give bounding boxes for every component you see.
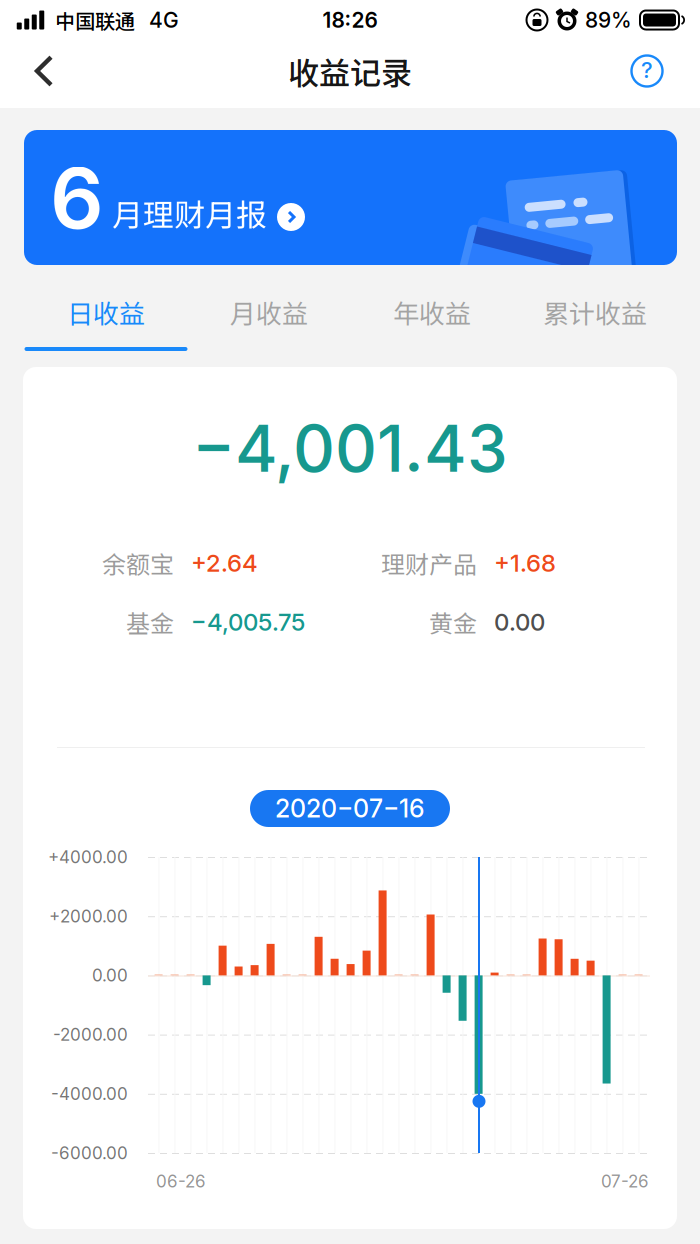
staticText: 基金 [126,605,174,639]
staticText: 6 [50,147,104,249]
staticText: −4,001.43 [192,409,508,487]
button[interactable]: 月收益 [187,273,350,351]
staticText: 累计收益 [543,293,647,331]
staticText: +4000.00 [48,847,128,867]
staticText: -4000.00 [51,1083,128,1104]
staticText: 0.00 [494,607,545,636]
staticText: 4G [149,7,179,33]
staticText: 2020−07−16 [275,793,425,824]
button[interactable]: 帮助 [609,40,685,102]
staticText: 06-26 [156,1171,206,1192]
button[interactable]: 日收益 [24,273,187,351]
staticText: ? [641,57,653,83]
staticText: 理财产品 [381,546,477,580]
staticText: +2.64 [191,548,258,577]
staticText: 收益记录 [288,49,412,93]
staticText: 中国联通 [55,5,135,34]
staticText: −4,005.75 [191,607,305,636]
staticText: 月理财月报 [112,191,267,235]
button[interactable]: 年收益 [350,273,513,351]
staticText: 年收益 [393,293,471,331]
staticText: 18:26 [322,7,377,33]
staticText: +1.68 [494,548,556,577]
staticText: 黄金 [429,605,477,639]
staticText: -2000.00 [53,1024,128,1045]
staticText: 月收益 [230,293,308,331]
staticText: 89% [585,7,632,33]
staticText: 日收益 [67,293,145,331]
button[interactable]: 返回 [6,40,82,102]
staticText: 0.00 [92,965,128,986]
button[interactable]: 576 [24,130,677,265]
staticText: +2000.00 [49,906,128,926]
button[interactable]: 2020−07−16 [250,790,450,827]
staticText: -6000.00 [51,1143,128,1163]
staticText: 07-26 [601,1171,649,1192]
button[interactable]: 累计收益 [513,273,676,351]
staticText: 余额宝 [102,546,174,580]
